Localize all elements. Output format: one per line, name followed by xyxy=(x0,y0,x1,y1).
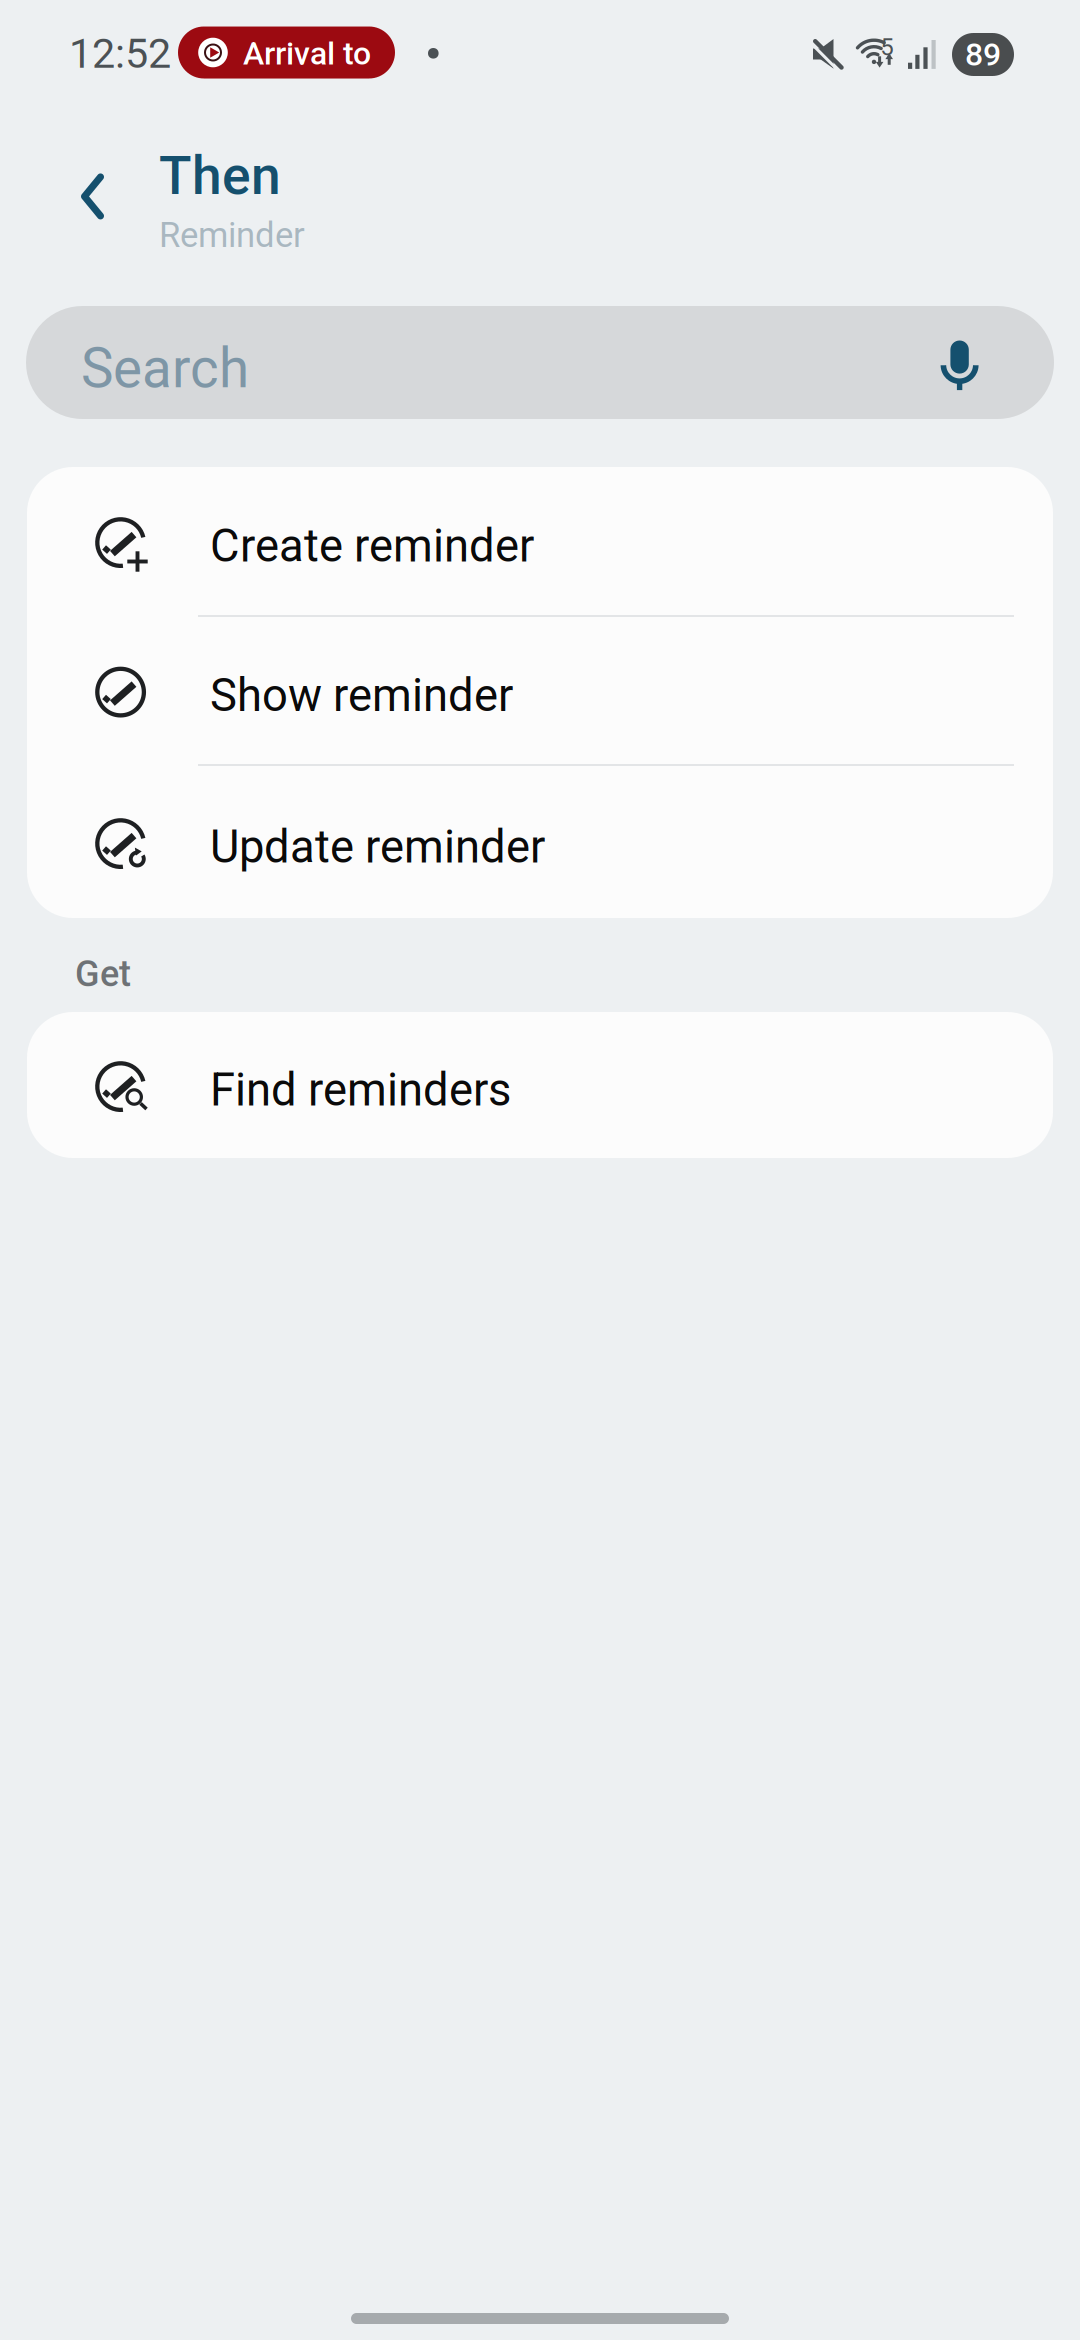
staticText: Arrival to xyxy=(243,35,371,72)
button[interactable]: Update reminder xyxy=(27,766,1053,918)
staticText: 89 xyxy=(965,36,1001,73)
staticText: Show reminder xyxy=(210,669,513,722)
button[interactable]: Create reminder xyxy=(27,467,1053,615)
staticText: Get xyxy=(75,953,131,995)
staticText: 5 xyxy=(880,33,893,61)
staticText: Then xyxy=(159,144,281,207)
button[interactable]: Find reminders xyxy=(27,1012,1053,1158)
staticText: Find reminders xyxy=(210,1063,511,1116)
staticText: 12:52 xyxy=(69,29,171,78)
staticText: Search xyxy=(81,336,249,401)
staticText: Reminder xyxy=(159,215,305,255)
staticText: Update reminder xyxy=(210,820,545,873)
button[interactable]: Back xyxy=(81,136,104,219)
staticText: Create reminder xyxy=(210,519,534,572)
button[interactable]: Show reminder xyxy=(27,617,1053,764)
button[interactable]: Search xyxy=(26,306,1054,419)
